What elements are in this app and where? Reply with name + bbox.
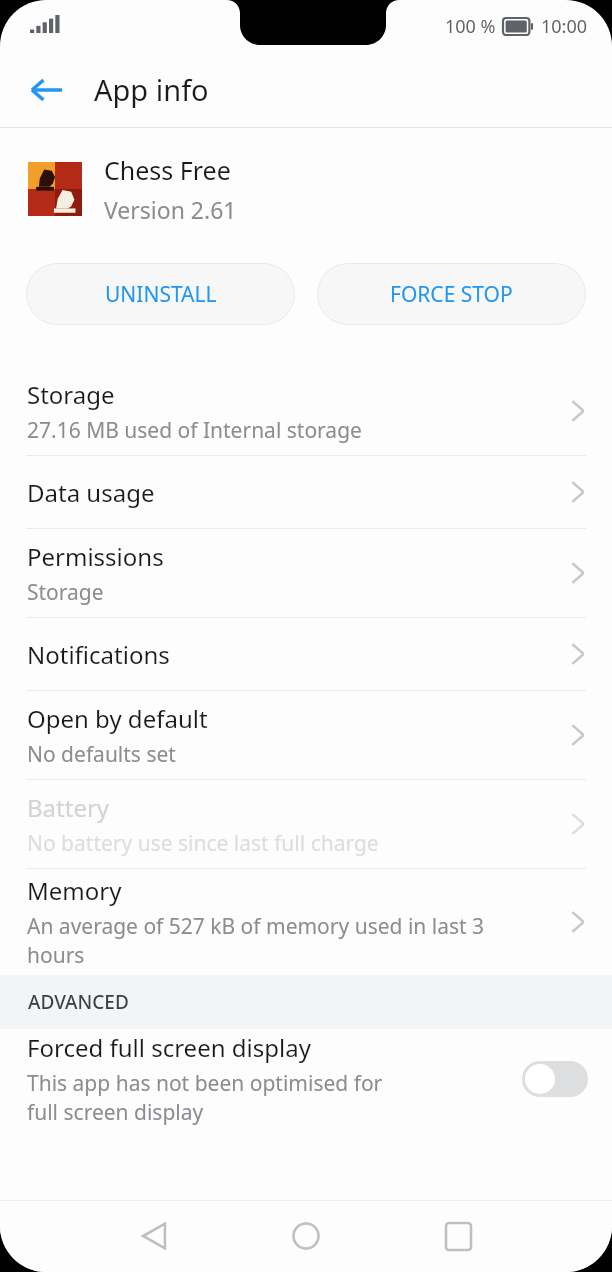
button[interactable]: Notifications	[0, 618, 612, 690]
staticText: ADVANCED	[28, 989, 129, 1015]
button[interactable]: Data usage	[0, 456, 612, 528]
staticText: Storage	[27, 378, 115, 411]
button[interactable]: Recent apps	[428, 1206, 488, 1266]
button[interactable]: Open by default	[0, 691, 612, 779]
staticText: 27.16 MB used of Internal storage	[27, 416, 362, 445]
staticText: Memory	[27, 874, 122, 907]
button[interactable]: Permissions	[0, 529, 612, 617]
button[interactable]: Home	[276, 1206, 336, 1266]
staticText: Version 2.61	[104, 194, 237, 225]
button[interactable]: UNINSTALL	[26, 263, 295, 325]
staticText: Storage	[27, 578, 104, 607]
staticText: Permissions	[27, 540, 164, 573]
staticText: No battery use since last full charge	[27, 829, 379, 858]
staticText: An average of 527 kB of memory used in l…	[27, 912, 492, 970]
button[interactable]: Back	[14, 58, 78, 122]
button[interactable]: Battery	[0, 780, 612, 868]
staticText: Chess Free	[104, 153, 231, 187]
staticText: Forced full screen display	[27, 1031, 311, 1064]
button[interactable]: Storage	[0, 367, 612, 455]
staticText: This app has not been optimised for full…	[27, 1069, 412, 1127]
staticText: Data usage	[27, 476, 155, 509]
staticText: FORCE STOP	[390, 280, 513, 309]
staticText: 10:00	[541, 14, 588, 39]
button[interactable]: Memory	[0, 869, 612, 975]
staticText: No defaults set	[27, 740, 176, 769]
button[interactable]: Back	[124, 1206, 184, 1266]
staticText: Battery	[27, 791, 110, 824]
staticText: Notifications	[27, 638, 170, 671]
staticText: UNINSTALL	[105, 280, 217, 309]
staticText: Open by default	[27, 702, 208, 735]
button[interactable]: Forced full screen display	[0, 1029, 612, 1129]
button[interactable]: FORCE STOP	[317, 263, 586, 325]
staticText: App info	[94, 70, 209, 109]
staticText: 100 %	[445, 14, 496, 39]
button[interactable]: Forced full screen display toggle	[522, 1061, 588, 1097]
